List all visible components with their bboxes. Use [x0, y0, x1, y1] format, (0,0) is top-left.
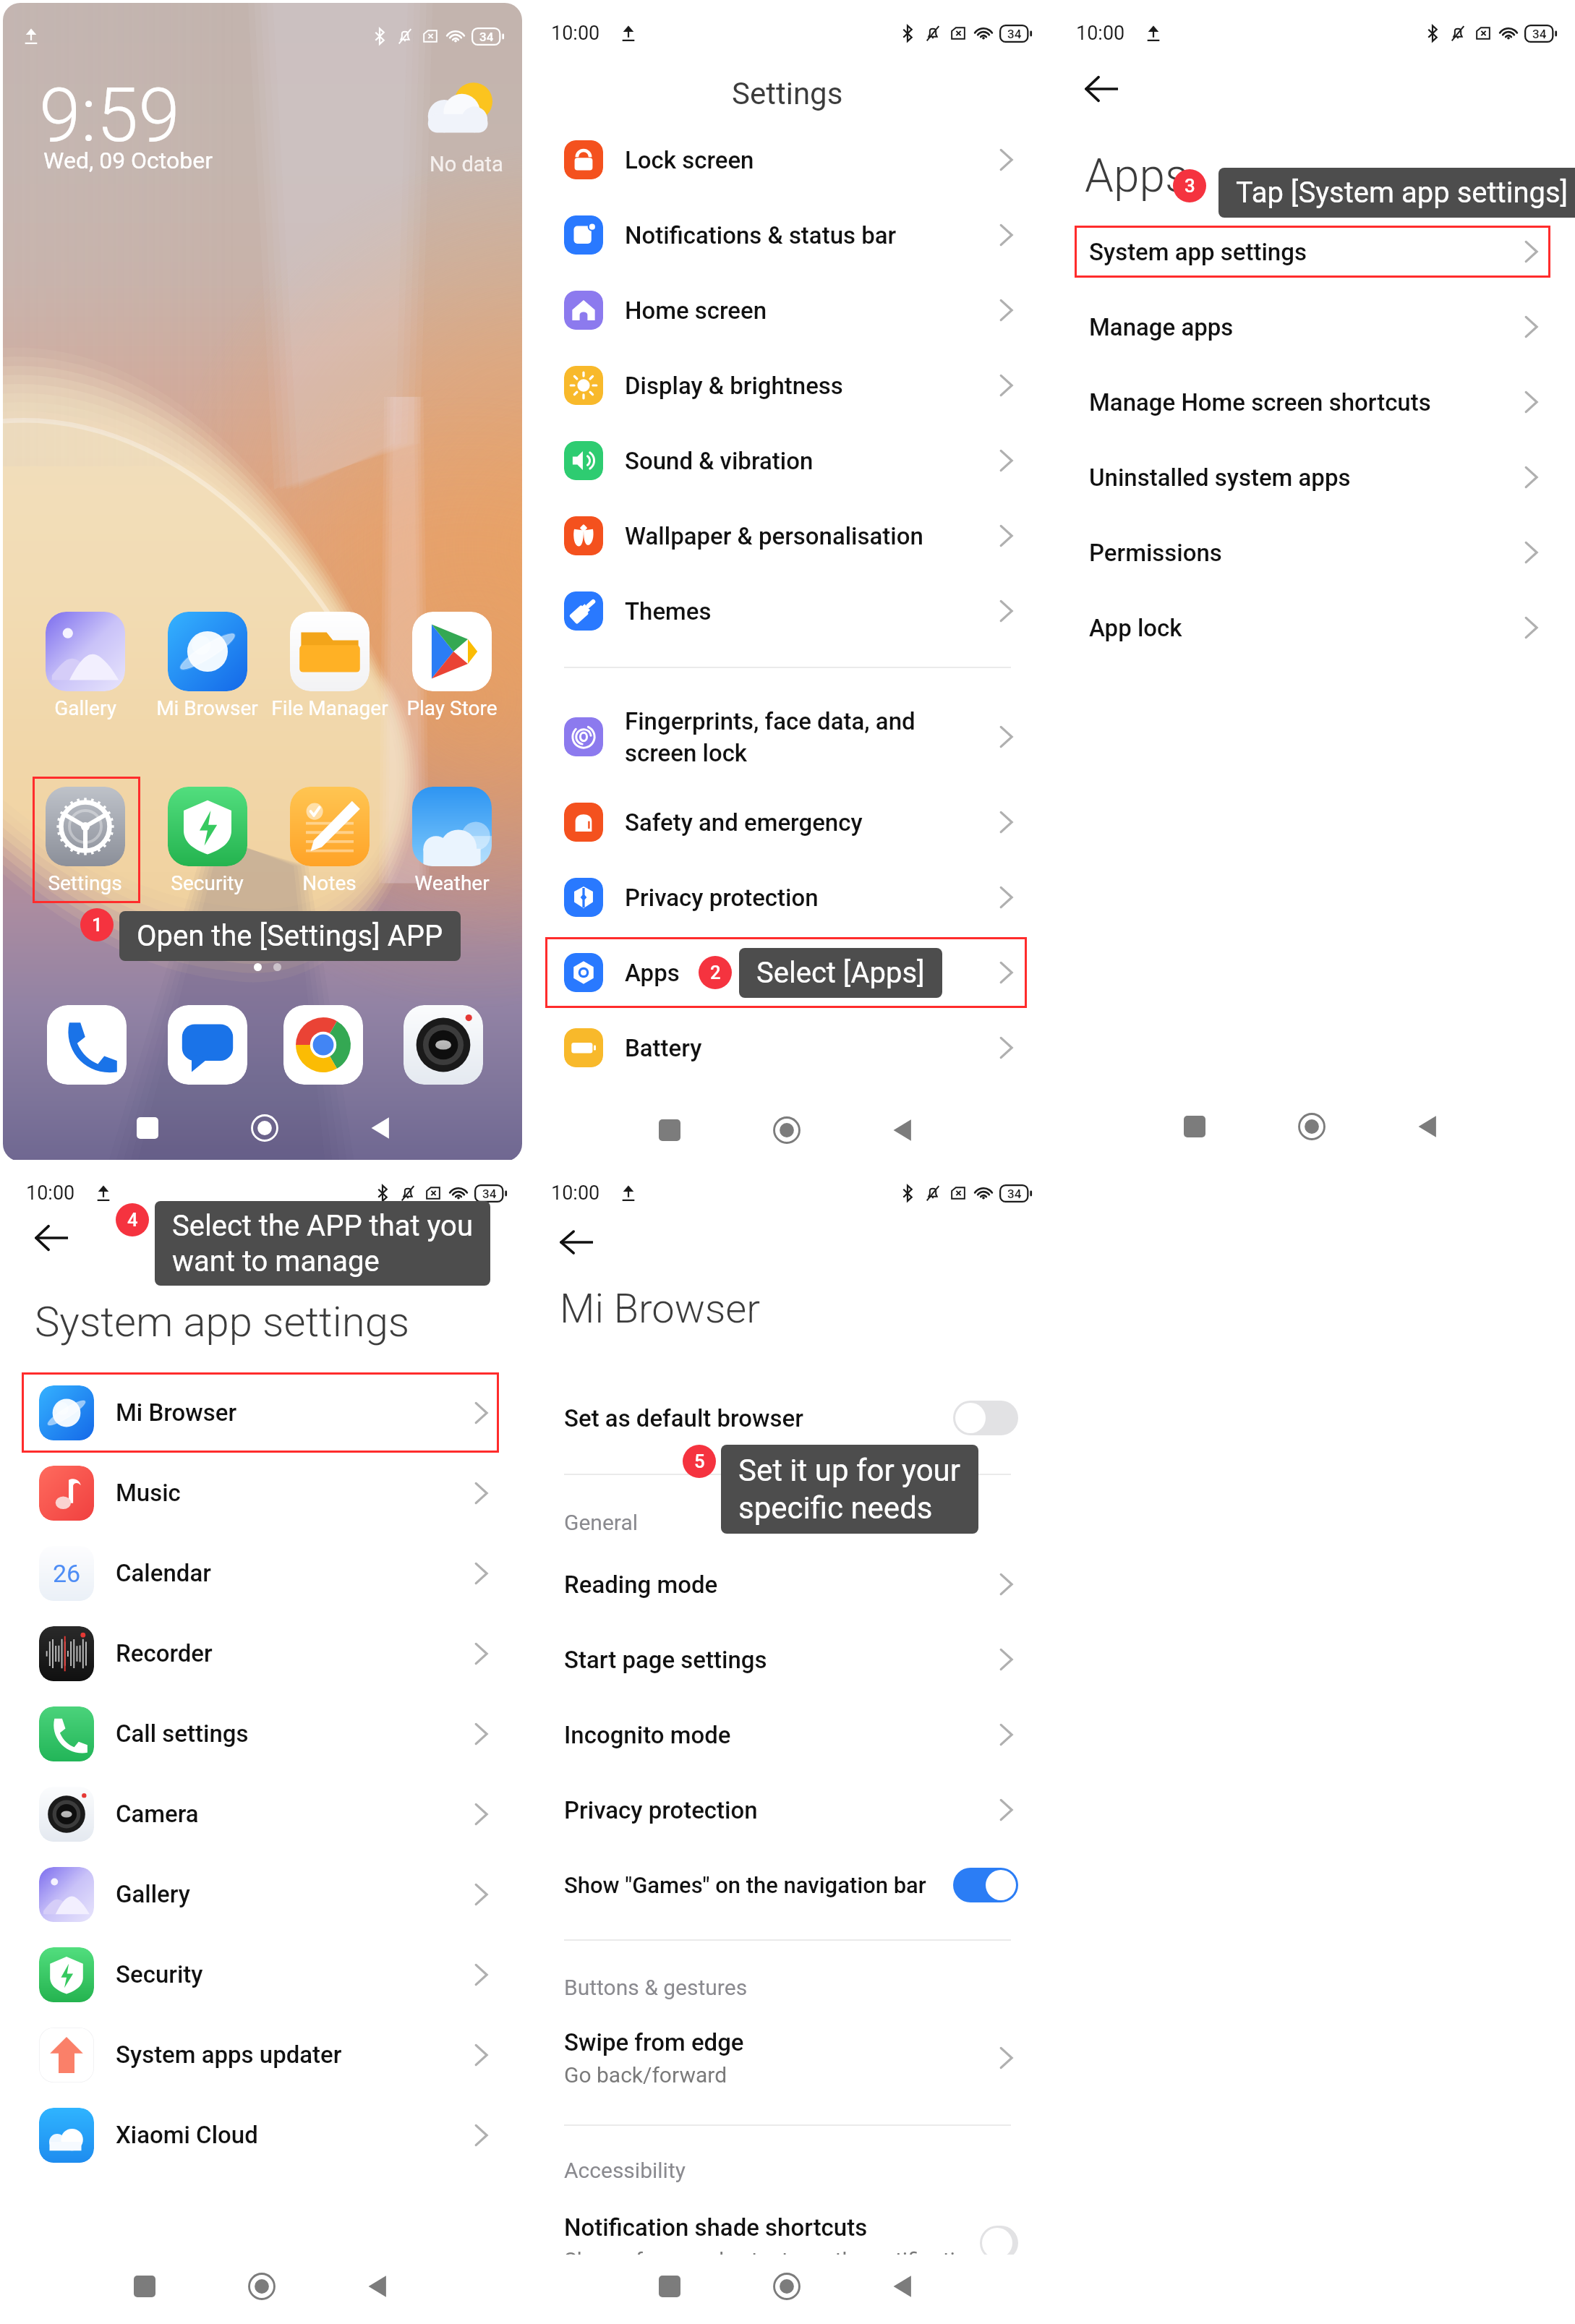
button[interactable]: Sound & vibration [525, 423, 1050, 498]
staticText: Gallery [116, 1880, 190, 1908]
button[interactable]: Recorder [0, 1613, 525, 1693]
staticText: Select [Apps] [756, 956, 925, 990]
button[interactable]: Battery [525, 1010, 1050, 1085]
staticText: Accessibility [564, 2158, 686, 2183]
staticText: Notifications & status bar [625, 221, 897, 249]
button[interactable]: Home [1272, 1093, 1352, 1161]
staticText: Camera [116, 1800, 199, 1828]
button[interactable]: Home [747, 1096, 827, 1164]
staticText: Buttons & gestures [564, 1975, 748, 2000]
button[interactable]: Home [222, 2252, 302, 2320]
button[interactable]: Camera [0, 1774, 525, 1854]
staticText: Notes [302, 871, 357, 895]
staticText: Reading mode [564, 1571, 718, 1599]
button[interactable]: Start page settings [525, 1622, 1050, 1697]
button[interactable]: Back [1070, 58, 1132, 120]
button[interactable]: Recents [105, 2252, 184, 2320]
button[interactable]: Lock screen [525, 122, 1050, 197]
button[interactable]: Chrome [283, 1005, 363, 1085]
staticText: 10:00 [1076, 22, 1125, 45]
button[interactable]: Back [545, 1226, 607, 1258]
staticText: 34 [1007, 1187, 1022, 1201]
button[interactable]: Reading mode [525, 1547, 1050, 1622]
button[interactable]: Incognito mode [525, 1697, 1050, 1772]
button[interactable]: Display & brightness [525, 348, 1050, 423]
button[interactable]: Manage apps [1050, 289, 1575, 364]
button[interactable]: Mi Browser [0, 1372, 525, 1453]
button[interactable]: Gallery [24, 612, 146, 720]
button[interactable]: Permissions [1050, 515, 1575, 590]
button[interactable]: Notifications & status bar [525, 197, 1050, 273]
staticText: Open the [Settings] APP [137, 919, 443, 953]
staticText: 26 [53, 1559, 81, 1588]
button[interactable]: Show "Games" on the navigation bar [525, 1847, 1050, 1923]
staticText: Settings [48, 871, 122, 895]
staticText: 10:00 [551, 1182, 600, 1205]
button[interactable]: Privacy protection [525, 1772, 1050, 1847]
button[interactable]: Privacy protection [525, 860, 1050, 935]
staticText: Apps [1085, 149, 1189, 203]
button[interactable]: Back [20, 1207, 82, 1269]
button[interactable]: Set as default browser [525, 1383, 1050, 1453]
staticText: Fingerprints, face data, and screen lock [625, 707, 915, 767]
button[interactable]: App lock [1050, 590, 1575, 665]
staticText: Themes [625, 597, 712, 625]
staticText: Display & brightness [625, 372, 843, 400]
button[interactable]: Call settings [0, 1693, 525, 1774]
button[interactable]: Music [0, 1453, 525, 1533]
button[interactable]: Recents [630, 2252, 709, 2320]
button[interactable]: Weather [390, 787, 513, 895]
button[interactable]: Notes [268, 787, 390, 895]
staticText: Tap [System app settings] [1236, 176, 1568, 210]
button[interactable]: Xiaomi Cloud [0, 2095, 525, 2175]
button[interactable]: Back [863, 2252, 943, 2320]
button[interactable]: Settings [24, 787, 146, 895]
button[interactable]: Gallery [0, 1854, 525, 1934]
button[interactable]: Mi Browser [146, 612, 268, 720]
button[interactable]: File Manager [268, 612, 390, 720]
staticText: Sound & vibration [625, 447, 814, 475]
button[interactable]: Back [863, 1096, 943, 1164]
button[interactable]: Back [341, 1094, 421, 1161]
staticText: Xiaomi Cloud [116, 2121, 258, 2149]
button[interactable]: Home screen [525, 273, 1050, 348]
staticText: Call settings [116, 1719, 249, 1748]
button[interactable]: Home [225, 1094, 304, 1161]
staticText: System apps updater [116, 2041, 342, 2069]
button[interactable]: Themes [525, 573, 1050, 649]
button[interactable]: Messages [168, 1005, 247, 1085]
staticText: Go back/forward [564, 2062, 727, 2088]
button[interactable]: Wallpaper & personalisation [525, 498, 1050, 573]
staticText: Play Store [406, 696, 498, 720]
button[interactable]: System app settings [1050, 214, 1575, 289]
button[interactable]: Back [1388, 1093, 1468, 1161]
button[interactable]: Camera [404, 1005, 483, 1085]
button[interactable]: Phone [47, 1005, 127, 1085]
button[interactable]: Play Store [390, 612, 513, 720]
staticText: 34 [482, 1187, 497, 1201]
staticText: Music [116, 1479, 181, 1507]
button[interactable]: Uninstalled system apps [1050, 440, 1575, 515]
button[interactable]: Recents [108, 1094, 187, 1161]
button[interactable]: System apps updater [0, 2015, 525, 2095]
button[interactable]: Home [747, 2252, 827, 2320]
button[interactable]: 26 [0, 1533, 525, 1613]
button[interactable]: Safety and emergency [525, 785, 1050, 860]
staticText: Manage apps [1089, 313, 1234, 341]
staticText: 34 [479, 30, 494, 44]
button[interactable]: Security [0, 1934, 525, 2015]
button[interactable]: Recents [630, 1096, 709, 1164]
staticText: Manage Home screen shortcuts [1089, 388, 1431, 416]
button[interactable]: Recents [1155, 1093, 1234, 1161]
button[interactable]: Manage Home screen shortcuts [1050, 364, 1575, 440]
staticText: Safety and emergency [625, 808, 863, 837]
button[interactable]: Back [338, 2252, 418, 2320]
staticText: Notification shade shortcuts [564, 2213, 868, 2242]
button[interactable]: Swipe from edge [525, 2016, 1050, 2100]
staticText: Set as default browser [564, 1404, 947, 1432]
staticText: System app settings [35, 1297, 410, 1346]
button[interactable]: Fingerprints, face data, and screen lock [525, 689, 1050, 785]
staticText: No data [430, 152, 503, 176]
button[interactable]: Apps [525, 935, 1050, 1010]
button[interactable]: Security [146, 787, 268, 895]
